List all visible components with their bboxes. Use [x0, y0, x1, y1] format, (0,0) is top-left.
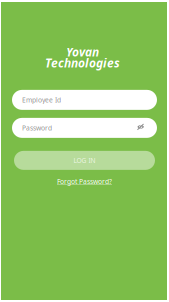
staticText: Password — [22, 123, 52, 132]
staticText: Yovan — [66, 44, 99, 60]
button[interactable]: Show password — [137, 124, 144, 131]
button[interactable]: Password — [12, 118, 157, 138]
button[interactable]: Forgot Password? — [57, 177, 112, 186]
button[interactable]: LOG IN — [14, 151, 155, 170]
button[interactable]: Employee Id — [12, 90, 157, 110]
staticText: Employee Id — [22, 95, 61, 104]
staticText: Forgot Password? — [57, 177, 112, 186]
staticText: LOG IN — [73, 156, 95, 165]
staticText: Technologies — [45, 55, 120, 71]
